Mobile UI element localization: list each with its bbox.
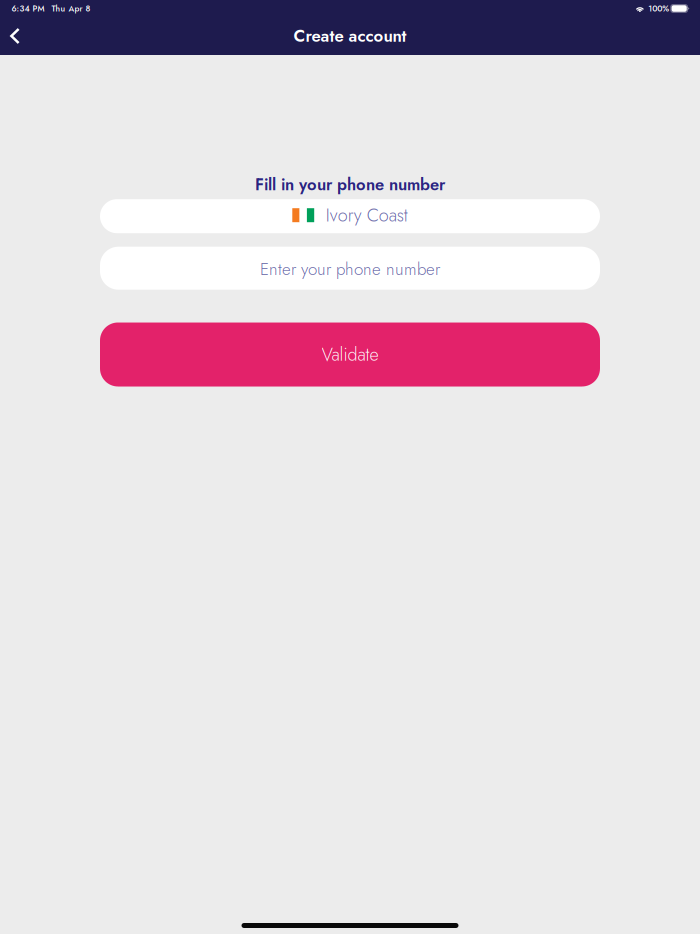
staticText: Create account bbox=[293, 24, 406, 48]
button[interactable]: Ivory Coast bbox=[100, 199, 600, 233]
staticText: Ivory Coast bbox=[326, 202, 408, 228]
staticText: Fill in your phone number bbox=[255, 173, 445, 196]
staticText: Thu Apr 8 bbox=[51, 2, 90, 14]
button[interactable]: Validate bbox=[100, 322, 600, 386]
staticText: Validate bbox=[321, 341, 378, 367]
button[interactable]: Enter your phone number bbox=[100, 247, 600, 290]
staticText: 6:34 PM bbox=[11, 2, 44, 14]
button[interactable]: Back bbox=[0, 19, 30, 53]
staticText: Enter your phone number bbox=[260, 257, 440, 281]
staticText: 100% bbox=[648, 2, 669, 14]
